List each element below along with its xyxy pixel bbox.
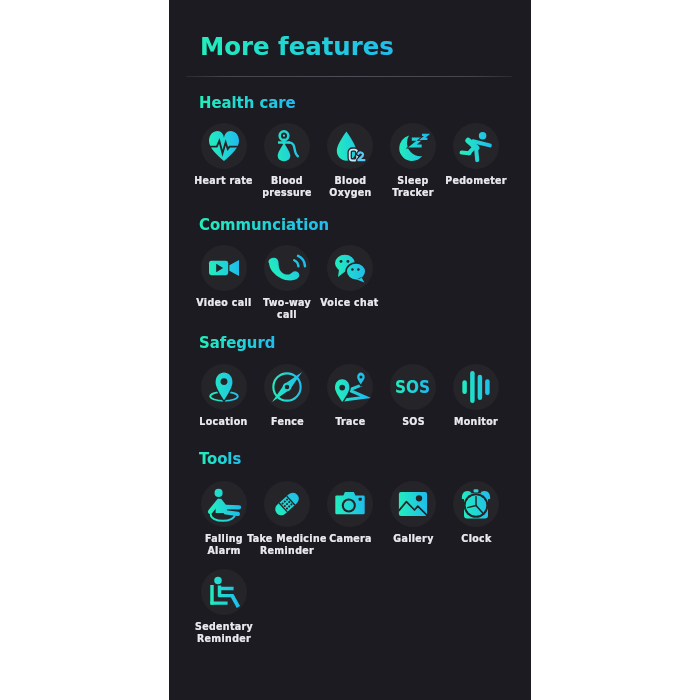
- button[interactable]: Pedometer: [444, 123, 507, 186]
- button[interactable]: Location: [192, 364, 255, 427]
- staticText: Sedentary Reminder: [195, 620, 253, 644]
- staticText: Blood Oxygen: [329, 174, 372, 198]
- staticText: Fence: [271, 415, 304, 427]
- staticText: Location: [199, 415, 248, 427]
- button[interactable]: Camera: [318, 481, 381, 544]
- button[interactable]: Clock: [444, 481, 507, 544]
- staticText: SOS: [402, 415, 425, 427]
- staticText: Gallery: [393, 532, 434, 544]
- staticText: Safegurd: [199, 333, 276, 352]
- staticText: Two-way call: [263, 296, 311, 320]
- button[interactable]: SOS: [381, 364, 444, 427]
- button[interactable]: Voice chat: [318, 245, 381, 308]
- staticText: Clock: [461, 532, 492, 544]
- button[interactable]: Sedentary Reminder: [192, 569, 255, 644]
- button[interactable]: Sleep Tracker: [381, 123, 444, 198]
- button[interactable]: Video call: [192, 245, 255, 308]
- staticText: Tools: [199, 449, 242, 468]
- button[interactable]: Fence: [255, 364, 318, 427]
- button[interactable]: Falling Alarm: [192, 481, 255, 556]
- button[interactable]: Blood Oxygen: [318, 123, 381, 198]
- staticText: Take Medicine Reminder: [247, 532, 327, 556]
- staticText: SOS: [395, 377, 431, 397]
- staticText: Trace: [335, 415, 366, 427]
- button[interactable]: Two-way call: [255, 245, 318, 320]
- staticText: Communciation: [199, 215, 330, 234]
- button[interactable]: Blood pressure: [255, 123, 318, 198]
- staticText: Pedometer: [445, 174, 507, 186]
- button[interactable]: Gallery: [381, 481, 444, 544]
- staticText: Blood pressure: [262, 174, 312, 198]
- button[interactable]: Monitor: [444, 364, 507, 427]
- button[interactable]: Heart rate: [192, 123, 255, 186]
- button[interactable]: Take Medicine Reminder: [255, 481, 318, 556]
- staticText: Falling Alarm: [205, 532, 243, 556]
- staticText: Voice chat: [320, 296, 379, 308]
- staticText: Video call: [196, 296, 252, 308]
- staticText: Health care: [199, 93, 296, 112]
- staticText: Heart rate: [194, 174, 253, 186]
- staticText: More features: [200, 32, 394, 60]
- staticText: Camera: [329, 532, 372, 544]
- button[interactable]: Trace: [318, 364, 381, 427]
- staticText: Sleep Tracker: [392, 174, 434, 198]
- staticText: Monitor: [454, 415, 498, 427]
